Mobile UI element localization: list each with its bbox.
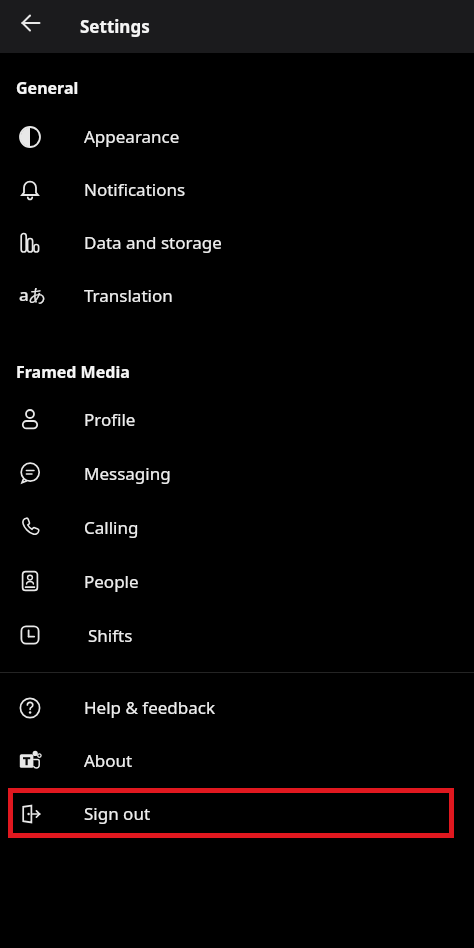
button[interactable]: Help & feedback — [0, 681, 474, 734]
staticText: About — [84, 749, 133, 772]
button[interactable]: Profile — [0, 392, 474, 446]
staticText: Notifications — [84, 178, 186, 201]
button[interactable]: Appearance — [0, 110, 474, 163]
staticText: Calling — [84, 516, 139, 539]
staticText: Appearance — [84, 125, 180, 148]
staticText: aあ — [19, 283, 47, 306]
staticText: People — [84, 570, 139, 593]
button[interactable]: Data and storage — [0, 216, 474, 269]
staticText: Framed Media — [16, 361, 130, 381]
button[interactable]: People — [0, 554, 474, 608]
button[interactable]: Calling — [0, 500, 474, 554]
staticText: Shifts — [88, 624, 133, 647]
staticText: Data and storage — [84, 231, 222, 254]
staticText: Profile — [84, 408, 136, 431]
staticText: Settings — [80, 15, 150, 38]
button[interactable]: About — [0, 734, 474, 787]
button[interactable] — [0, 0, 53, 53]
button[interactable]: Shifts — [0, 608, 474, 662]
staticText: Sign out — [84, 802, 151, 825]
button[interactable]: Notifications — [0, 163, 474, 216]
button[interactable]: Translation — [0, 269, 474, 322]
staticText: Help & feedback — [84, 696, 216, 719]
staticText: Translation — [84, 284, 173, 307]
button[interactable]: Sign out — [0, 787, 474, 840]
staticText: General — [16, 77, 79, 97]
button[interactable]: Messaging — [0, 446, 474, 500]
staticText: Messaging — [84, 462, 171, 485]
